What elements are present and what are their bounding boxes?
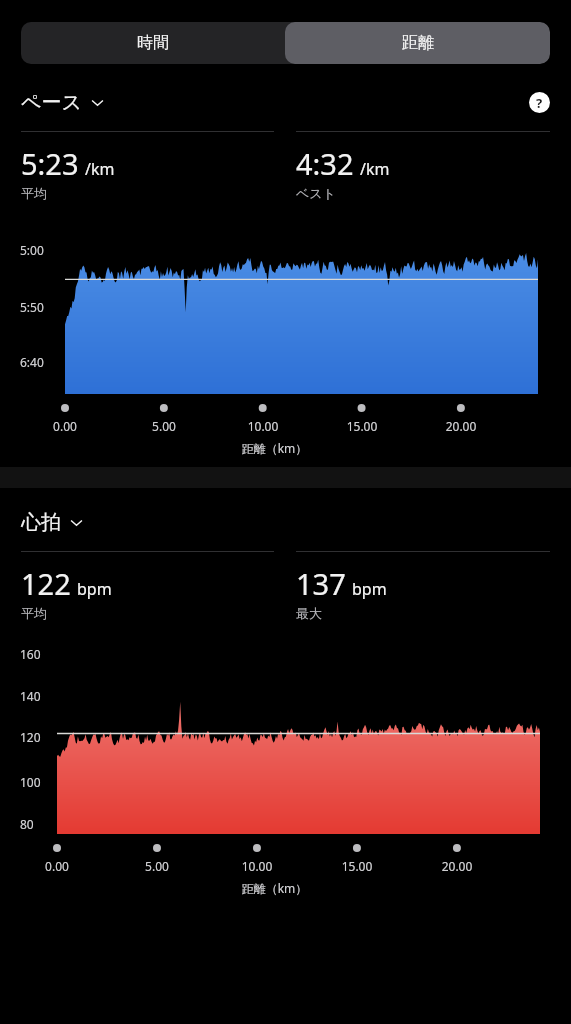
staticText: 20.00: [433, 858, 481, 874]
staticText: /km: [85, 158, 115, 180]
staticText: 最大: [296, 605, 322, 621]
button[interactable]: 時間: [21, 22, 285, 64]
staticText: 0.00: [33, 858, 81, 874]
staticText: 10.00: [233, 858, 281, 874]
staticText: ベスト: [296, 185, 336, 201]
staticText: /km: [360, 158, 390, 180]
staticText: 15.00: [333, 858, 381, 874]
button[interactable]: ペース: [21, 90, 106, 115]
staticText: 心拍: [21, 510, 61, 535]
staticText: 6:40: [20, 354, 44, 370]
staticText: 平均: [21, 185, 47, 201]
staticText: 平均: [21, 605, 47, 621]
staticText: 10.00: [239, 418, 287, 434]
staticText: 5:00: [20, 242, 44, 258]
staticText: 距離（km）: [0, 880, 549, 896]
staticText: 100: [20, 774, 41, 790]
staticText: 距離（km）: [0, 440, 549, 456]
staticText: 137: [296, 564, 346, 603]
staticText: 5:50: [20, 299, 44, 315]
staticText: 140: [20, 688, 41, 704]
staticText: ?: [536, 94, 543, 112]
staticText: 時間: [137, 33, 169, 53]
button[interactable]: ヘルプ: [529, 92, 550, 113]
staticText: ペース: [21, 90, 82, 115]
staticText: 0.00: [41, 418, 89, 434]
staticText: 5.00: [133, 858, 181, 874]
staticText: 5.00: [140, 418, 188, 434]
staticText: 120: [20, 729, 41, 745]
staticText: 5:23: [21, 144, 79, 183]
staticText: bpm: [352, 578, 387, 600]
button[interactable]: 心拍: [21, 510, 550, 535]
staticText: 80: [20, 816, 34, 832]
staticText: bpm: [77, 578, 112, 600]
staticText: 4:32: [296, 144, 354, 183]
button[interactable]: 距離: [285, 22, 550, 64]
staticText: 160: [20, 646, 41, 662]
staticText: 20.00: [437, 418, 485, 434]
staticText: 122: [21, 564, 71, 603]
staticText: 距離: [402, 33, 434, 53]
staticText: 15.00: [338, 418, 386, 434]
